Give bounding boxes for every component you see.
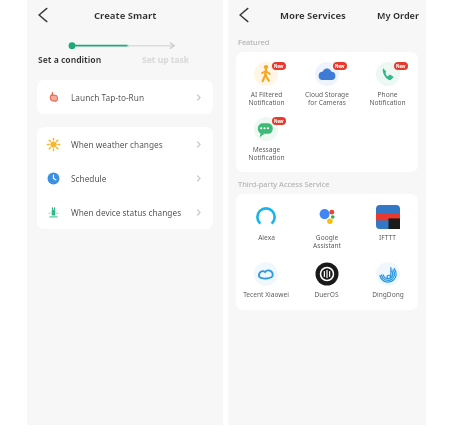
staticText: Create Smart: [94, 9, 157, 22]
staticText: Third-party Access Service: [238, 179, 330, 189]
button[interactable]: Schedule: [37, 161, 213, 195]
staticText: DingDong: [372, 290, 404, 299]
staticText: Alexa: [258, 233, 275, 242]
staticText: Schedule: [71, 173, 107, 184]
staticText: Set a condition: [38, 54, 102, 66]
button[interactable]: IFTTT: [357, 202, 418, 245]
button[interactable]: New: [357, 59, 418, 110]
staticText: Launch Tap-to-Run: [71, 92, 145, 103]
staticText: Message Notification: [248, 145, 285, 162]
staticText: Google Assistant: [313, 233, 341, 250]
staticText: DuerOS: [314, 290, 339, 299]
staticText: AI Filtered Notification: [248, 90, 285, 107]
button[interactable]: New: [236, 59, 296, 110]
staticText: Phone Notification: [369, 90, 406, 107]
button[interactable]: When weather changes: [37, 127, 213, 161]
button[interactable]: DingDong: [357, 259, 418, 302]
button[interactable]: New: [236, 114, 296, 165]
staticText: Cloud Storage for Cameras: [305, 90, 349, 107]
staticText: Tecent Xiaowei: [243, 290, 289, 299]
staticText: Set up task: [142, 54, 190, 66]
button[interactable]: Back: [31, 4, 53, 26]
staticText: My Order: [377, 9, 420, 21]
staticText: New: [274, 63, 284, 69]
staticText: IFTTT: [379, 233, 396, 242]
staticText: New: [396, 63, 406, 69]
button[interactable]: Back: [232, 4, 254, 26]
staticText: When weather changes: [71, 139, 163, 150]
button[interactable]: New: [296, 59, 357, 110]
button[interactable]: When device status changes: [37, 195, 213, 229]
button[interactable]: Alexa: [236, 202, 296, 245]
staticText: New: [274, 118, 284, 124]
button[interactable]: My Order: [377, 9, 426, 21]
button[interactable]: Google Assistant: [296, 202, 357, 253]
staticText: When device status changes: [71, 207, 182, 218]
button[interactable]: Launch Tap-to-Run: [37, 80, 213, 114]
staticText: More Services: [280, 9, 346, 22]
button[interactable]: DuerOS: [296, 259, 357, 302]
staticText: Featured: [238, 37, 270, 47]
button[interactable]: Tecent Xiaowei: [236, 259, 296, 302]
staticText: New: [335, 63, 345, 69]
